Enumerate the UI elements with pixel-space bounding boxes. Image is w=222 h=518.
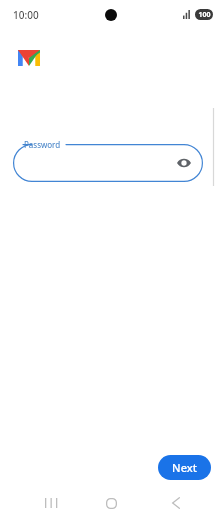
staticText: 10:00 [13, 8, 39, 22]
button[interactable]: Show password [13, 144, 203, 182]
staticText: Password [24, 139, 61, 150]
button[interactable]: Home [96, 488, 126, 518]
staticText: Next [172, 460, 197, 475]
button[interactable]: Show password [174, 153, 194, 173]
staticText: 100 [198, 10, 211, 20]
button[interactable]: Next [158, 455, 211, 480]
button[interactable]: Back [161, 488, 191, 518]
button[interactable]: Recent apps [35, 488, 65, 518]
